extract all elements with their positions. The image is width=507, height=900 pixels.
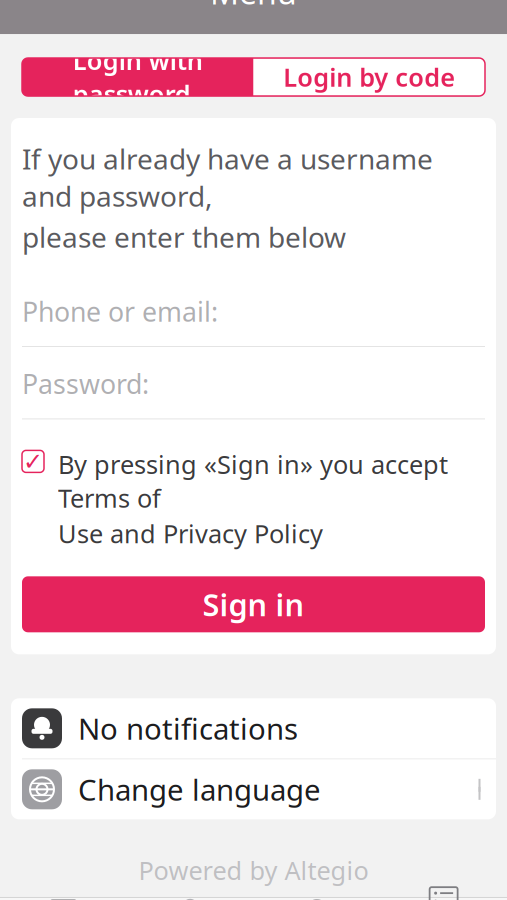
staticText: Password: [22,366,149,401]
button[interactable]: ✓ [22,447,485,550]
button[interactable]: No notifications [11,698,496,758]
staticText: Use and Privacy Policy [58,517,323,550]
button[interactable]: Sign in [22,576,485,632]
button[interactable]: i [253,898,380,900]
button[interactable]: Powered by Altegio [126,843,380,897]
staticText: By pressing «Sign in» you accept Terms o… [58,447,448,515]
button[interactable]: My bookings [380,898,507,900]
staticText: Login with password [73,43,203,111]
button[interactable]: Change language [11,759,496,819]
staticText: please enter them below [22,218,346,256]
staticText: If you already have a username and passw… [22,140,433,214]
staticText: i [313,898,320,900]
staticText: Login by code [283,60,455,94]
button[interactable]: Booking [0,898,127,900]
staticText: Powered by Altegio [138,853,368,887]
button[interactable]: Login by code [253,58,485,96]
staticText: Sign in [202,584,304,625]
staticText: Phone or email: [22,294,218,329]
staticText: ✓ [23,448,43,475]
button[interactable]: Login with password [22,58,253,96]
staticText: Menu [210,0,297,13]
staticText: Change language [78,770,321,809]
staticText: No notifications [78,709,298,748]
button[interactable]: Profile [127,898,254,900]
